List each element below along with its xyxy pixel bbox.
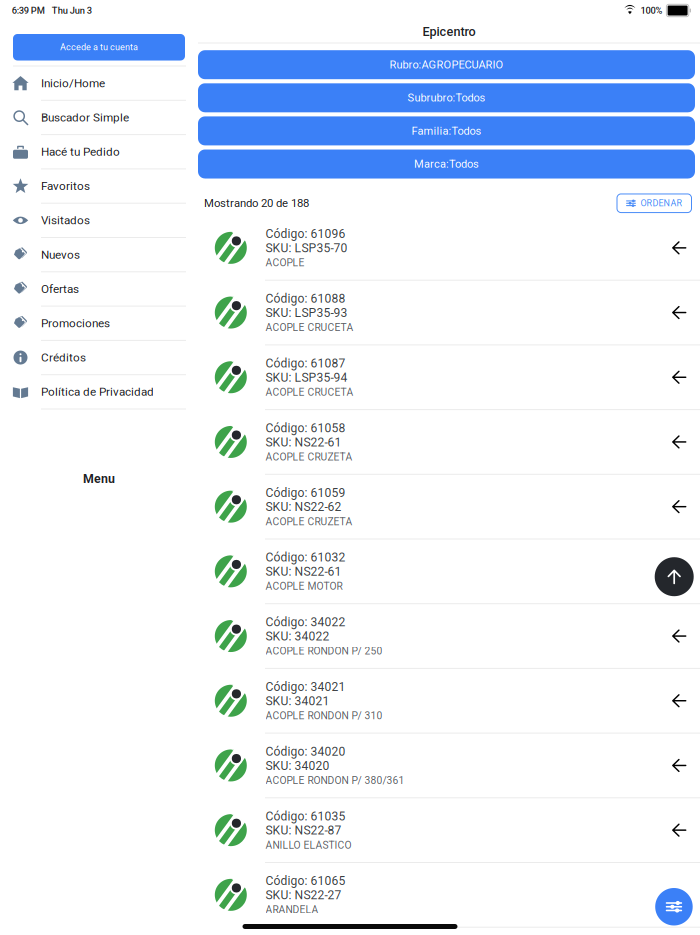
staticText: Código: 61088 [265, 292, 345, 306]
staticText: ARANDELA [265, 904, 318, 916]
staticText: ACOPLE CRUCETA [265, 386, 353, 398]
staticText: SKU: NS22-27 [265, 888, 341, 902]
staticText: Nuevos [41, 248, 80, 261]
staticText: Buscador Simple [41, 111, 129, 124]
staticText: SKU: NS22-62 [265, 500, 341, 514]
staticText: ANILLO ELASTICO [265, 839, 351, 851]
staticText: Código: 61032 [265, 550, 345, 565]
button[interactable]: Visitados [0, 204, 198, 238]
staticText: ACOPLE RONDON P/ 310 [265, 710, 382, 722]
staticText: SKU: LSP35-94 [265, 370, 347, 385]
button[interactable]: Marca:Todos [198, 149, 695, 178]
staticText: SKU: 34022 [265, 629, 329, 643]
staticText: ACOPLE RONDON P/ 380/361 [265, 774, 404, 786]
button[interactable]: Filters [655, 888, 693, 925]
button[interactable]: ORDENAR [617, 194, 691, 213]
staticText: Código: 61096 [265, 227, 345, 241]
staticText: Ofertas [41, 282, 79, 296]
staticText: SKU: LSP35-70 [265, 241, 347, 255]
staticText: Política de Privacidad [41, 385, 154, 399]
button[interactable]: Créditos [0, 341, 198, 375]
button[interactable]: Código: 34021 [198, 669, 700, 734]
staticText: Créditos [41, 351, 86, 364]
staticText: ACOPLE MOTOR [265, 580, 342, 592]
button[interactable]: Promociones [0, 307, 198, 341]
staticText: 100% [640, 5, 662, 16]
button[interactable]: Accede a tu cuenta [0, 34, 198, 60]
staticText: Mostrando 20 de 188 [204, 197, 309, 210]
button[interactable]: Inicio/Home [0, 66, 198, 101]
button[interactable]: Subrubro:Todos [198, 83, 695, 112]
staticText: ACOPLE [265, 257, 304, 269]
staticText: 6:39 PM [12, 5, 45, 16]
button[interactable]: Rubro:AGROPECUARIO [198, 50, 695, 79]
staticText: ACOPLE CRUZETA [265, 451, 352, 463]
staticText: SKU: 34020 [265, 759, 329, 773]
staticText: ORDENAR [640, 198, 682, 209]
staticText: Código: 34020 [265, 744, 345, 759]
button[interactable]: Ofertas [0, 272, 198, 307]
staticText: Marca:Todos [414, 157, 479, 170]
button[interactable]: Código: 61032 [198, 539, 700, 604]
staticText: Familia:Todos [411, 124, 481, 137]
button[interactable]: Nuevos [0, 238, 198, 272]
button[interactable]: Código: 61035 [198, 798, 700, 863]
staticText: ACOPLE RONDON P/ 250 [265, 645, 382, 657]
staticText: Subrubro:Todos [407, 91, 485, 104]
staticText: Código: 34021 [265, 680, 345, 694]
staticText: Menu [83, 471, 115, 486]
staticText: Código: 34022 [265, 615, 345, 629]
staticText: Código: 61035 [265, 809, 345, 823]
button[interactable]: Familia:Todos [198, 116, 695, 145]
button[interactable]: Código: 61059 [198, 475, 700, 539]
button[interactable]: Código: 61058 [198, 410, 700, 475]
button[interactable]: Favoritos [0, 169, 198, 204]
staticText: Hacé tu Pedido [41, 145, 120, 159]
button[interactable]: Scroll to top [655, 557, 694, 596]
button[interactable]: Código: 61065 [198, 863, 700, 928]
button[interactable]: Buscador Simple [0, 101, 198, 135]
button[interactable]: Código: 61096 [198, 216, 700, 281]
staticText: Thu Jun 3 [52, 5, 92, 16]
staticText: Promociones [41, 316, 110, 330]
button[interactable]: Código: 34022 [198, 604, 700, 669]
staticText: Favoritos [41, 179, 90, 193]
staticText: Inicio/Home [41, 76, 105, 90]
staticText: Código: 61087 [265, 356, 345, 370]
staticText: SKU: NS22-61 [265, 565, 341, 579]
staticText: SKU: NS22-61 [265, 435, 341, 449]
staticText: SKU: NS22-87 [265, 823, 341, 838]
staticText: Epicentro [422, 24, 475, 39]
staticText: Código: 61059 [265, 486, 345, 500]
staticText: Visitados [41, 213, 90, 227]
staticText: ACOPLE CRUCETA [265, 321, 353, 334]
button[interactable]: Código: 61087 [198, 345, 700, 410]
staticText: Accede a tu cuenta [60, 42, 138, 52]
staticText: Rubro:AGROPECUARIO [389, 58, 503, 71]
staticText: ACOPLE CRUZETA [265, 516, 352, 528]
staticText: Código: 61058 [265, 421, 345, 435]
button[interactable]: Política de Privacidad [0, 375, 198, 409]
staticText: Código: 61065 [265, 874, 345, 888]
button[interactable]: Código: 34020 [198, 734, 700, 798]
staticText: SKU: 34021 [265, 694, 329, 708]
staticText: SKU: LSP35-93 [265, 306, 347, 320]
button[interactable]: Hacé tu Pedido [0, 135, 198, 169]
button[interactable]: Código: 61088 [198, 281, 700, 345]
